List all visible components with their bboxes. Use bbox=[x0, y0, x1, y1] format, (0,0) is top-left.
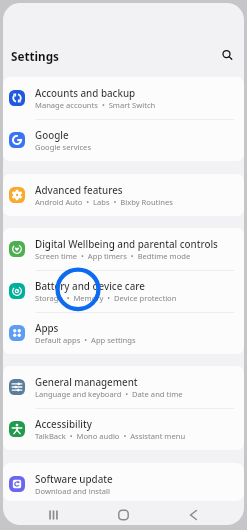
button[interactable]: Accounts and backup bbox=[3, 77, 244, 119]
staticText: Default apps • App settings bbox=[35, 335, 136, 345]
staticText: Battery and device care bbox=[35, 279, 146, 293]
staticText: Accessibility bbox=[35, 417, 93, 431]
button[interactable]: Advanced features bbox=[3, 174, 244, 216]
staticText: Language and keyboard • Date and time bbox=[35, 389, 183, 399]
staticText: Download and install bbox=[35, 486, 110, 496]
button[interactable]: Back bbox=[176, 503, 211, 525]
button[interactable]: General management bbox=[3, 366, 244, 408]
staticText: Screen time • App timers • Bedtime mode bbox=[35, 251, 191, 261]
button[interactable]: Accessibility bbox=[3, 409, 244, 450]
button[interactable]: Search bbox=[214, 42, 239, 67]
staticText: Android Auto • Labs • Bixby Routines bbox=[35, 197, 173, 207]
button[interactable]: Recent apps bbox=[36, 503, 71, 525]
staticText: Accounts and backup bbox=[35, 86, 135, 100]
button[interactable]: Google bbox=[3, 120, 244, 161]
button[interactable]: Digital Wellbeing and parental controls bbox=[3, 228, 244, 270]
staticText: Apps bbox=[35, 321, 59, 335]
staticText: Google bbox=[35, 128, 69, 142]
button[interactable]: Software update bbox=[3, 463, 244, 501]
staticText: Digital Wellbeing and parental controls bbox=[35, 237, 218, 251]
button[interactable]: Home bbox=[106, 503, 141, 525]
button[interactable]: Battery and device care bbox=[3, 271, 244, 312]
button[interactable]: Apps bbox=[3, 313, 244, 354]
staticText: Advanced features bbox=[35, 183, 123, 197]
staticText: Settings bbox=[11, 47, 60, 65]
staticText: Manage accounts • Smart Switch bbox=[35, 100, 156, 110]
staticText: Software update bbox=[35, 472, 113, 486]
staticText: General management bbox=[35, 375, 138, 389]
staticText: Storage • Memory • Device protection bbox=[35, 293, 177, 303]
staticText: Google services bbox=[35, 142, 92, 152]
staticText: TalkBack • Mono audio • Assistant menu bbox=[35, 431, 186, 441]
